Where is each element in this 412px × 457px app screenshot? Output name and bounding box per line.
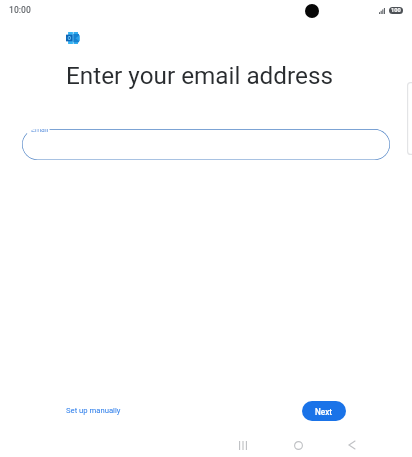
- button[interactable]: Set up manually: [56, 401, 131, 420]
- button[interactable]: Next: [302, 401, 346, 421]
- staticText: Set up manually: [66, 406, 121, 415]
- staticText: 100: [391, 7, 401, 14]
- staticText: 10:00: [9, 5, 31, 15]
- button[interactable]: Back: [332, 433, 372, 457]
- button[interactable]: Email: [22, 129, 390, 160]
- staticText: Enter your email address: [66, 61, 333, 89]
- button[interactable]: Home: [278, 433, 318, 457]
- staticText: Email: [31, 129, 49, 134]
- button[interactable]: Recent apps: [223, 433, 263, 457]
- staticText: Next: [315, 407, 333, 417]
